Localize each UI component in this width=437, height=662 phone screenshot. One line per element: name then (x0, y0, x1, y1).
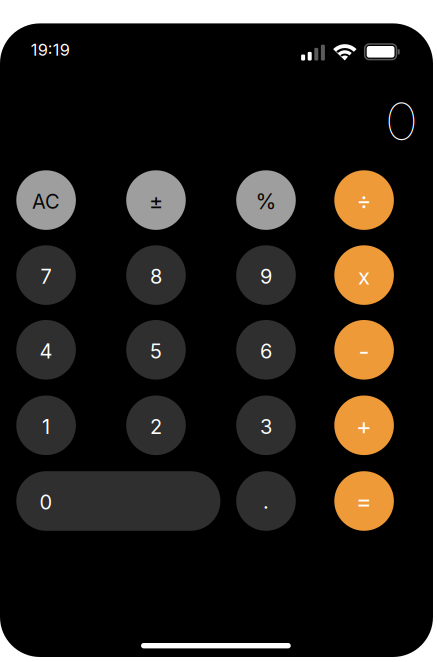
button[interactable]: x (334, 245, 394, 305)
button[interactable]: 6 (236, 320, 296, 380)
button[interactable]: 5 (126, 320, 186, 380)
staticText: 6 (260, 339, 272, 363)
button[interactable]: - (334, 320, 394, 380)
button[interactable]: . (236, 471, 296, 531)
staticText: 19:19 (31, 40, 70, 60)
button[interactable]: 4 (16, 320, 76, 380)
staticText: % (255, 188, 276, 214)
button[interactable]: 7 (16, 245, 76, 305)
button[interactable]: ÷ (334, 170, 394, 230)
button[interactable]: + (334, 395, 394, 455)
staticText: 2 (150, 414, 162, 439)
button[interactable]: % (236, 170, 296, 230)
staticText: x (358, 263, 370, 290)
button[interactable]: AC (16, 170, 76, 230)
button[interactable]: 8 (126, 245, 186, 305)
button[interactable]: 1 (16, 395, 76, 455)
staticText: - (359, 337, 370, 366)
staticText: + (356, 412, 372, 441)
staticText: 3 (260, 414, 272, 439)
staticText: 1 (42, 414, 50, 439)
staticText: 0 (387, 90, 416, 153)
button[interactable]: 9 (236, 245, 296, 305)
staticText: 4 (40, 339, 53, 363)
staticText: 8 (150, 264, 162, 288)
staticText: AC (32, 189, 60, 213)
button[interactable]: 0 (16, 471, 220, 531)
button[interactable]: 3 (236, 395, 296, 455)
staticText: = (356, 486, 372, 515)
staticText: 5 (150, 339, 162, 363)
staticText: . (263, 489, 269, 514)
button[interactable]: = (334, 471, 394, 531)
staticText: 9 (260, 264, 272, 288)
button[interactable]: 2 (126, 395, 186, 455)
staticText: 0 (40, 490, 53, 514)
staticText: ÷ (357, 187, 372, 215)
staticText: ± (149, 188, 163, 214)
staticText: 7 (41, 264, 52, 288)
button[interactable]: ± (126, 170, 186, 230)
